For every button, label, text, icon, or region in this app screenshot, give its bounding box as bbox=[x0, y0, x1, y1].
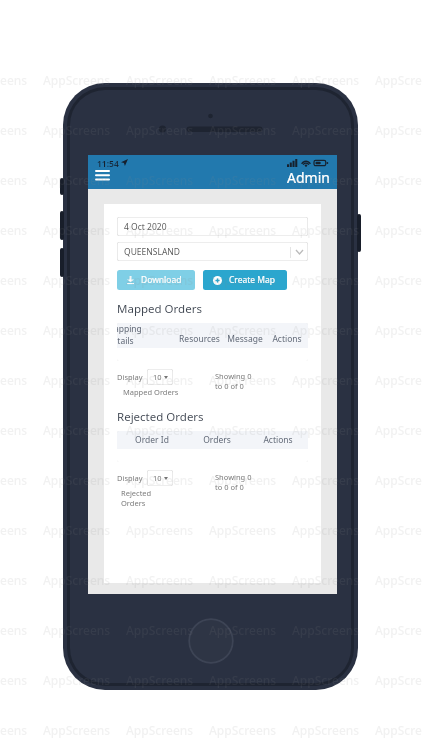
staticText: 11:54 bbox=[97, 158, 119, 170]
staticText: AppScreens bbox=[375, 122, 422, 138]
button[interactable]: Home bbox=[188, 618, 234, 664]
staticText: 10 bbox=[153, 473, 162, 483]
button[interactable]: 10 bbox=[147, 470, 173, 486]
staticText: AppScreens bbox=[209, 172, 277, 188]
staticText: AppScreens bbox=[375, 172, 422, 188]
staticText: AppScreens bbox=[126, 722, 194, 738]
staticText: AppScreens bbox=[0, 222, 28, 238]
staticText: Resources bbox=[179, 333, 220, 345]
staticText: AppScreens bbox=[375, 372, 422, 388]
staticText: AppScreens bbox=[375, 472, 422, 488]
staticText: AppScreens bbox=[292, 322, 360, 338]
staticText: AppScreens bbox=[292, 522, 360, 538]
button[interactable]: Mapping bbox=[117, 323, 174, 348]
staticText: AppScreens bbox=[209, 722, 277, 738]
staticText: AppScreens bbox=[375, 622, 422, 638]
staticText: AppScreens bbox=[292, 672, 360, 688]
button[interactable]: Actions bbox=[247, 431, 308, 449]
staticText: AppScreens bbox=[126, 222, 194, 238]
staticText: AppScreens bbox=[0, 472, 28, 488]
staticText: Actions bbox=[263, 434, 293, 446]
button[interactable]: Actions bbox=[266, 323, 308, 348]
staticText: Details bbox=[117, 335, 134, 345]
staticText: Display bbox=[117, 372, 143, 382]
staticText: Mapped Orders bbox=[123, 387, 179, 397]
staticText: AppScreens bbox=[375, 422, 422, 438]
staticText: AppScreens bbox=[292, 722, 360, 738]
staticText: AppScreens bbox=[0, 572, 28, 588]
staticText: AppScreens bbox=[43, 522, 111, 538]
staticText: AppScreens bbox=[0, 372, 28, 388]
staticText: AppScreens bbox=[43, 422, 111, 438]
staticText: to 0 of 0 bbox=[215, 381, 244, 391]
staticText: AppScreens bbox=[375, 272, 422, 288]
button[interactable]: Admin bbox=[287, 168, 330, 187]
staticText: AppScreens bbox=[126, 122, 194, 138]
button[interactable]: Download bbox=[117, 270, 195, 290]
staticText: AppScreens bbox=[126, 572, 194, 588]
staticText: AppScreens bbox=[375, 672, 422, 688]
staticText: AppScreens bbox=[209, 472, 277, 488]
staticText: AppScreens bbox=[0, 322, 28, 338]
staticText: AppScreens bbox=[126, 472, 194, 488]
staticText: AppScreens bbox=[209, 622, 277, 638]
staticText: Display bbox=[117, 473, 143, 483]
button[interactable]: Create Map bbox=[203, 270, 287, 290]
staticText: to 0 of 0 bbox=[215, 482, 244, 492]
staticText: AppScreens bbox=[0, 272, 28, 288]
staticText: Create Map bbox=[229, 274, 276, 286]
staticText: AppScreens bbox=[126, 322, 194, 338]
staticText: AppScreens bbox=[43, 172, 111, 188]
staticText: Rejected Orders bbox=[121, 488, 152, 508]
staticText: AppScreens bbox=[209, 672, 277, 688]
staticText: AppScreens bbox=[209, 72, 277, 88]
staticText: AppScreens bbox=[292, 472, 360, 488]
staticText: AppScreens bbox=[375, 722, 422, 738]
staticText: Message bbox=[227, 333, 263, 345]
button[interactable]: QUEENSLAND bbox=[117, 242, 308, 261]
staticText: AppScreens bbox=[126, 272, 194, 288]
staticText: Actions bbox=[272, 333, 302, 345]
staticText: 4 Oct 2020 bbox=[124, 221, 167, 233]
staticText: AppScreens bbox=[0, 672, 28, 688]
staticText: AppScreens bbox=[292, 122, 360, 138]
staticText: AppScreens bbox=[375, 522, 422, 538]
button[interactable]: Message bbox=[224, 323, 266, 348]
staticText: 10 bbox=[153, 372, 162, 382]
staticText: AppScreens bbox=[292, 572, 360, 588]
button[interactable]: 4 Oct 2020 bbox=[117, 217, 308, 236]
staticText: AppScreens bbox=[0, 172, 28, 188]
staticText: AppScreens bbox=[43, 622, 111, 638]
staticText: AppScreens bbox=[209, 122, 277, 138]
staticText: AppScreens bbox=[0, 422, 28, 438]
staticText: AppScreens bbox=[126, 422, 194, 438]
staticText: AppScreens bbox=[0, 622, 28, 638]
button[interactable]: Open navigation menu bbox=[95, 169, 110, 182]
staticText: AppScreens bbox=[126, 372, 194, 388]
button[interactable]: Orders bbox=[186, 431, 247, 449]
staticText: AppScreens bbox=[209, 422, 277, 438]
staticText: AppScreens bbox=[126, 72, 194, 88]
staticText: AppScreens bbox=[292, 422, 360, 438]
staticText: AppScreens bbox=[292, 72, 360, 88]
staticText: AppScreens bbox=[0, 122, 28, 138]
staticText: AppScreens bbox=[43, 122, 111, 138]
staticText: AppScreens bbox=[209, 572, 277, 588]
staticText: AppScreens bbox=[43, 472, 111, 488]
staticText: Admin bbox=[287, 168, 330, 187]
staticText: AppScreens bbox=[209, 272, 277, 288]
staticText: AppScreens bbox=[43, 722, 111, 738]
staticText: AppScreens bbox=[43, 672, 111, 688]
button[interactable]: Resources bbox=[174, 323, 224, 348]
staticText: AppScreens bbox=[292, 622, 360, 638]
staticText: Orders bbox=[203, 434, 231, 446]
staticText: AppScreens bbox=[43, 222, 111, 238]
staticText: Rejected Orders bbox=[117, 409, 204, 425]
staticText: Mapping bbox=[117, 323, 142, 335]
button[interactable]: 10 bbox=[147, 369, 173, 385]
staticText: AppScreens bbox=[209, 522, 277, 538]
staticText: AppScreens bbox=[43, 72, 111, 88]
staticText: AppScreens bbox=[126, 672, 194, 688]
button[interactable]: Order Id bbox=[117, 431, 186, 449]
staticText: AppScreens bbox=[375, 322, 422, 338]
